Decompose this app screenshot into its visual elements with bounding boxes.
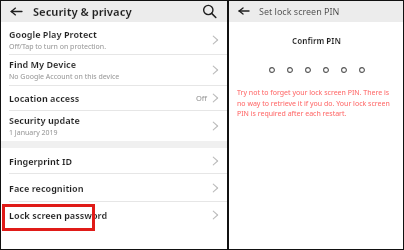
staticText: Find My Device — [9, 58, 77, 70]
button[interactable]: Find My Device — [0, 55, 227, 85]
button[interactable]: Location access — [0, 86, 227, 110]
button[interactable]: Security update — [0, 111, 227, 141]
staticText: Location access — [9, 92, 80, 104]
button[interactable]: Back — [8, 3, 24, 19]
button[interactable]: Face recognition — [0, 174, 227, 201]
staticText: Off — [196, 93, 208, 103]
staticText: Try not to forget your lock screen PIN. … — [237, 88, 396, 118]
staticText: Google Play Protect — [9, 28, 97, 40]
button[interactable]: Fingerprint ID — [0, 148, 227, 173]
button[interactable]: Google Play Protect — [0, 26, 227, 54]
staticText: 1 January 2019 — [9, 128, 58, 138]
staticText: Set lock screen PIN — [259, 5, 340, 17]
staticText: Confirm PIN — [229, 35, 404, 46]
button[interactable]: Back — [236, 3, 252, 19]
staticText: Face recognition — [9, 182, 84, 194]
staticText: Off/Tap to turn on protection. — [9, 42, 107, 52]
staticText: No Google Account on this device — [9, 72, 120, 82]
staticText: Security update — [9, 114, 80, 126]
staticText: Lock screen password — [9, 209, 108, 221]
button[interactable]: Lock screen password — [0, 202, 227, 227]
staticText: Fingerprint ID — [9, 155, 73, 167]
button[interactable]: Search — [200, 2, 218, 20]
staticText: Security & privacy — [33, 4, 132, 19]
